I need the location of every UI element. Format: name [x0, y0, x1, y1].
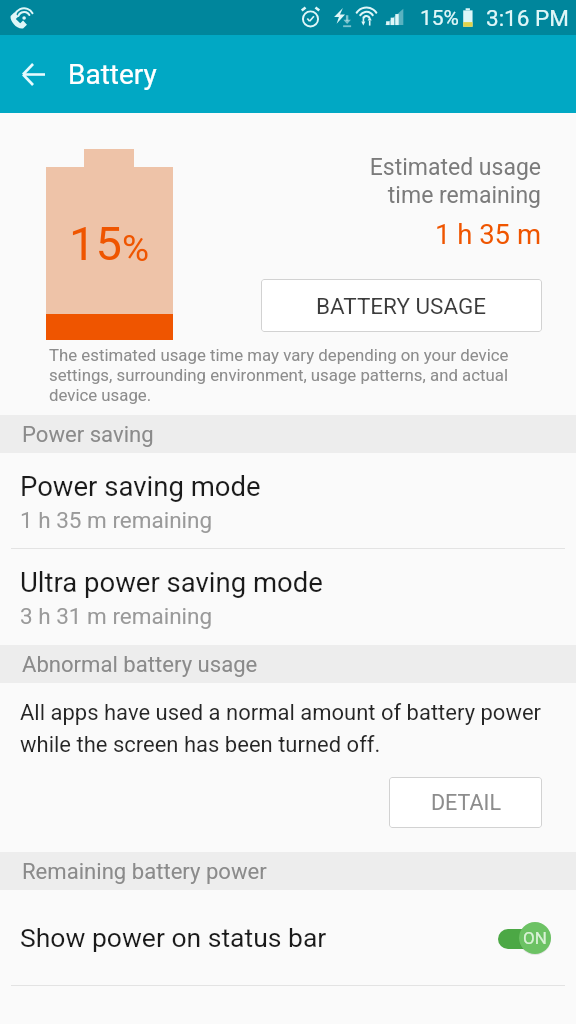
- staticText: Abnormal battery usage: [22, 651, 258, 677]
- staticText: 3:16 PM: [486, 5, 569, 31]
- staticText: ON: [523, 928, 547, 948]
- staticText: Estimated usage time remaining: [369, 154, 541, 209]
- staticText: %: [122, 227, 150, 270]
- staticText: DETAIL: [431, 790, 501, 815]
- staticText: Battery: [68, 58, 157, 91]
- button[interactable]: Ultra power saving mode: [0, 549, 576, 645]
- staticText: 3 h 31 m remaining: [20, 603, 213, 629]
- staticText: The estimated usage time may vary depend…: [49, 345, 527, 405]
- staticText: Power saving mode: [20, 470, 261, 502]
- button[interactable]: Power saving mode: [0, 455, 576, 548]
- staticText: All apps have used a normal amount of ba…: [20, 700, 568, 757]
- staticText: Power saving: [22, 421, 154, 447]
- button[interactable]: DETAIL: [389, 777, 542, 828]
- staticText: 15%: [420, 6, 459, 31]
- button[interactable]: Show power on status bar: [0, 890, 576, 985]
- staticText: Show power on status bar: [20, 922, 498, 953]
- button[interactable]: Back: [6, 46, 62, 102]
- staticText: BATTERY USAGE: [316, 293, 487, 319]
- staticText: 1 h 35 m: [221, 218, 541, 250]
- staticText: 1 h 35 m remaining: [20, 507, 213, 533]
- staticText: Remaining battery power: [22, 858, 267, 884]
- staticText: Ultra power saving mode: [20, 566, 323, 598]
- staticText: 15: [69, 216, 122, 271]
- button[interactable]: BATTERY USAGE: [261, 279, 542, 332]
